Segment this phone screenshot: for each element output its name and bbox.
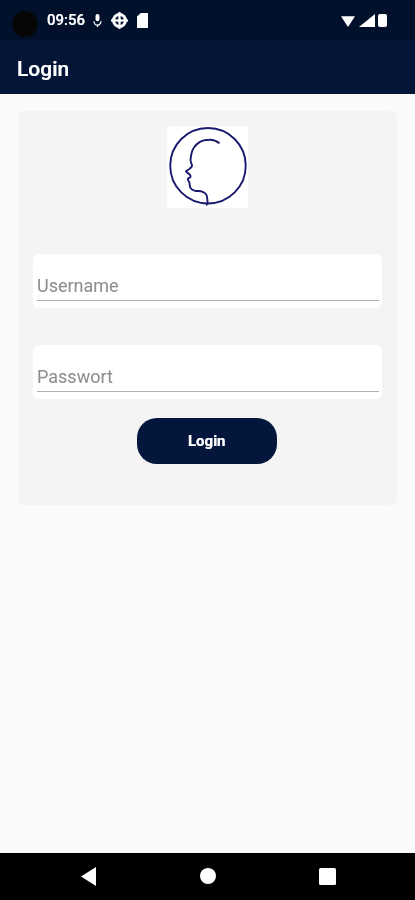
button[interactable]: Login (137, 418, 277, 464)
button[interactable]: Passwort (33, 345, 382, 399)
button[interactable]: Home (186, 854, 230, 898)
button[interactable]: Back (66, 854, 110, 898)
button[interactable]: Username (33, 254, 382, 308)
staticText: Login (188, 432, 226, 450)
staticText: Login (17, 57, 70, 82)
button[interactable]: Recent apps (305, 854, 349, 898)
staticText: Username (37, 275, 119, 296)
staticText: Passwort (37, 366, 113, 387)
staticText: 09:56 (47, 11, 86, 29)
